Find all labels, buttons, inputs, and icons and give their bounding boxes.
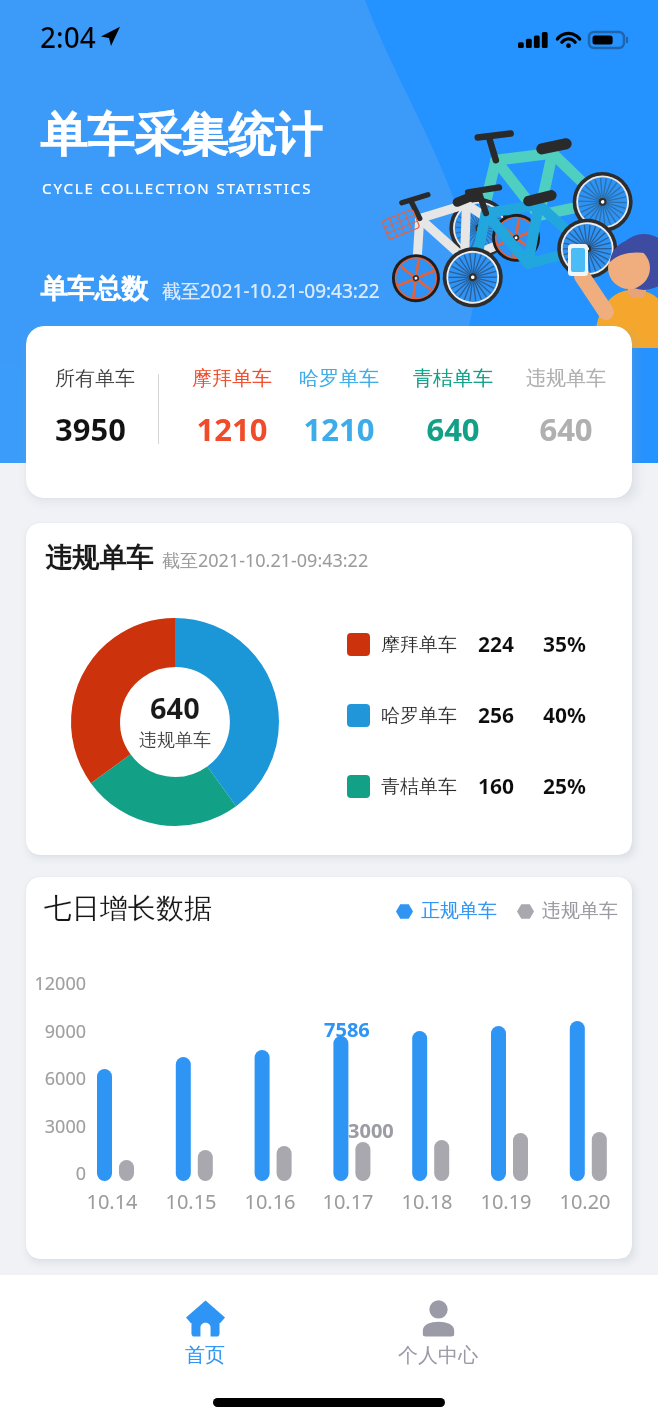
staticText: 10.18 [387,1188,467,1215]
staticText: 10.16 [230,1188,310,1215]
staticText: 青桔单车 [393,366,513,391]
staticText: 9000 [26,1019,86,1044]
staticText: 10.14 [72,1188,152,1215]
staticText: 25% [543,772,586,801]
staticText: 160 [478,772,515,801]
staticText: 3000 [26,1114,86,1139]
staticText: 违规单车 [506,366,626,391]
button[interactable]: 首页 [145,1293,265,1374]
staticText: 摩拜单车 [381,633,457,657]
staticText: 640 [506,408,626,450]
staticText: 7586 [324,1016,370,1043]
staticText: CYCLE COLLECTION STATISTICS [42,178,313,198]
staticText: 12000 [26,971,86,996]
staticText: 10.15 [151,1188,231,1215]
staticText: 正规单车 [421,899,497,923]
staticText: 首页 [185,1343,225,1368]
staticText: 6000 [26,1066,86,1091]
staticText: 224 [478,630,515,659]
staticText: 1210 [172,408,292,450]
staticText: 10.17 [308,1188,388,1215]
staticText: 违规单车 [542,899,618,923]
staticText: 0 [26,1161,86,1186]
staticText: 违规单车 [139,729,211,752]
staticText: 个人中心 [398,1343,478,1368]
staticText: 2:04 [40,18,96,56]
staticText: 截至2021-10.21-09:43:22 [162,278,380,304]
staticText: 10.19 [466,1188,546,1215]
staticText: 青桔单车 [381,775,457,799]
staticText: 256 [478,701,515,730]
staticText: 违规单车 [45,541,153,575]
staticText: 640 [393,408,513,450]
staticText: 35% [543,630,586,659]
staticText: 10.20 [545,1188,625,1215]
staticText: 3000 [348,1117,394,1144]
staticText: 单车采集统计 [40,106,322,165]
staticText: 摩拜单车 [172,366,292,391]
staticText: 单车总数 [40,272,148,306]
staticText: 哈罗单车 [279,366,399,391]
staticText: 3950 [55,408,126,450]
button[interactable]: 个人中心 [378,1293,498,1374]
staticText: 所有单车 [55,366,135,391]
staticText: 七日增长数据 [44,891,212,926]
staticText: 640 [150,688,200,727]
staticText: 哈罗单车 [381,704,457,728]
staticText: 40% [543,701,586,730]
staticText: 1210 [279,408,399,450]
staticText: 截至2021-10.21-09:43:22 [162,548,369,573]
